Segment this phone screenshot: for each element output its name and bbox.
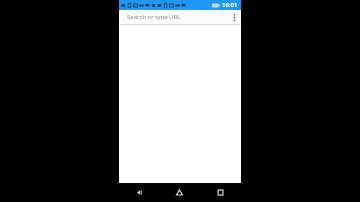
button[interactable]: Recent apps (200, 183, 241, 202)
button[interactable]: Home (159, 183, 200, 202)
staticText: 16:01 (222, 1, 238, 9)
button[interactable]: More options (227, 10, 241, 24)
button[interactable]: Back (119, 183, 159, 202)
staticText: Search or type URL (127, 13, 181, 21)
button[interactable]: Search or type URL (119, 10, 227, 24)
